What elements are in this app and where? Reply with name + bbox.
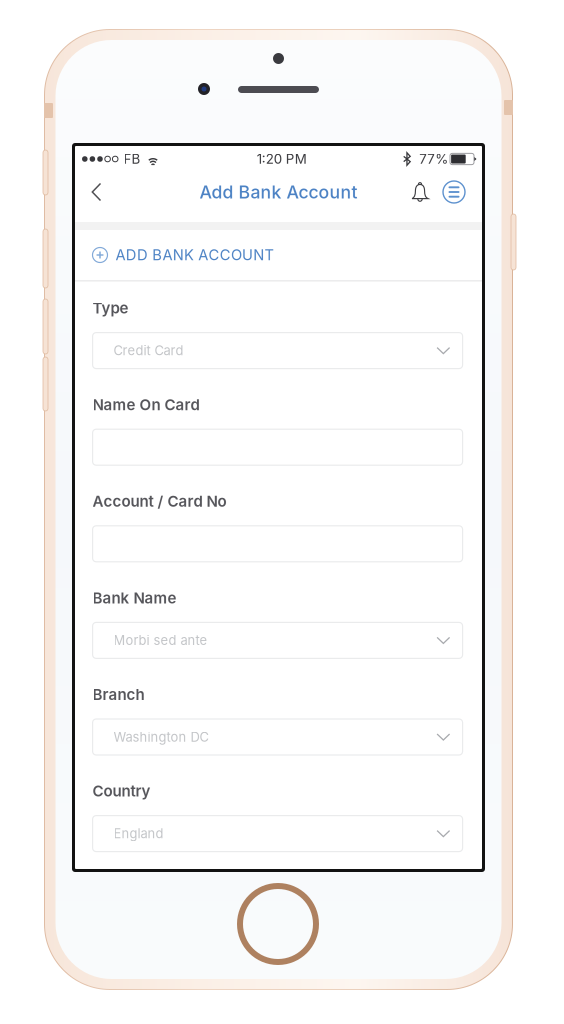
button[interactable]: Menu — [437, 172, 471, 212]
button[interactable] — [93, 526, 463, 562]
staticText: 77% — [419, 151, 448, 167]
button[interactable]: Morbi sed ante — [93, 622, 463, 658]
staticText: Account / Card No — [93, 492, 227, 510]
staticText: Morbi sed ante — [114, 633, 208, 648]
staticText: Country — [93, 782, 151, 800]
staticText: Add Bank Account — [199, 181, 357, 203]
staticText: 1:20 PM — [257, 151, 307, 167]
button[interactable]: England — [93, 816, 463, 852]
button[interactable]: Credit Card — [93, 333, 463, 369]
staticText: Washington DC — [114, 729, 209, 745]
button[interactable]: ADD BANK ACCOUNT — [75, 230, 482, 280]
staticText: Name On Card — [93, 396, 200, 414]
staticText: Branch — [93, 685, 145, 704]
staticText: Type — [93, 299, 129, 317]
staticText: Credit Card — [114, 343, 184, 358]
button[interactable]: Back — [77, 172, 115, 212]
staticText: FB — [123, 151, 140, 167]
staticText: ADD BANK ACCOUNT — [115, 246, 273, 264]
button[interactable]: Notifications — [405, 172, 435, 212]
staticText: Bank Name — [93, 589, 177, 607]
button[interactable] — [93, 429, 463, 465]
staticText: England — [114, 826, 164, 841]
button[interactable]: Washington DC — [93, 719, 463, 755]
